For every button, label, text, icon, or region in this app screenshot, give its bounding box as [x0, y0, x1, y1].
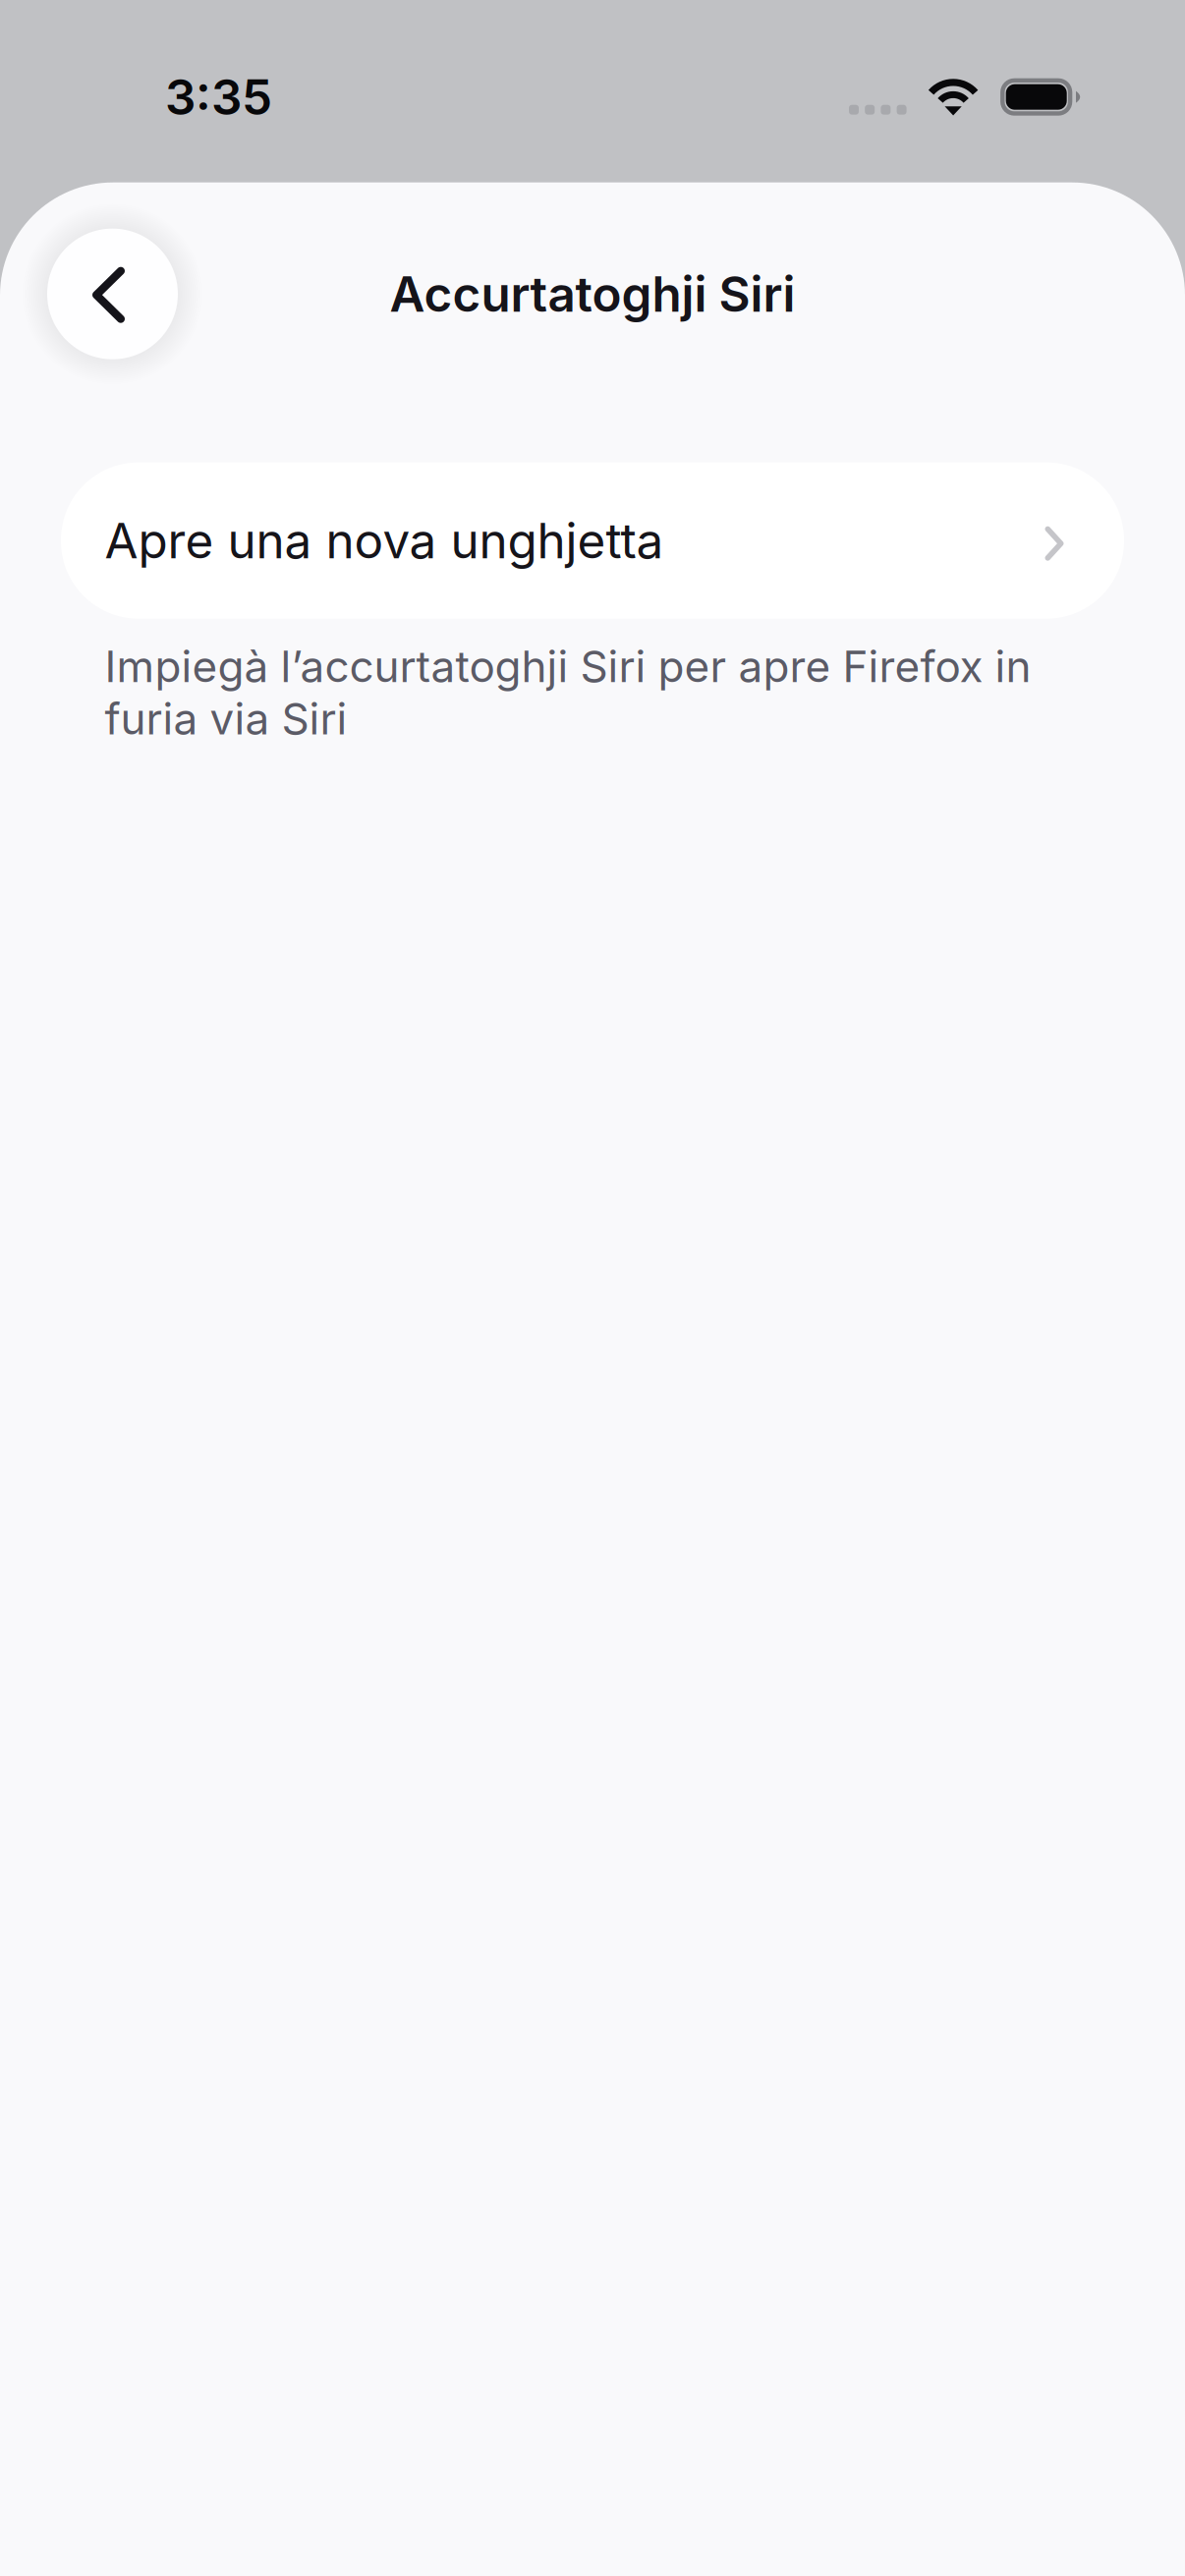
- staticText: Impiegà l’accurtatoghji Siri per apre Fi…: [105, 640, 1031, 745]
- button[interactable]: Apre una nova unghjetta: [61, 462, 1124, 619]
- button[interactable]: Back: [47, 229, 178, 359]
- staticText: Apre una nova unghjetta: [105, 511, 664, 570]
- staticText: Accurtatoghji Siri: [390, 265, 795, 323]
- staticText: 3:35: [165, 68, 272, 126]
